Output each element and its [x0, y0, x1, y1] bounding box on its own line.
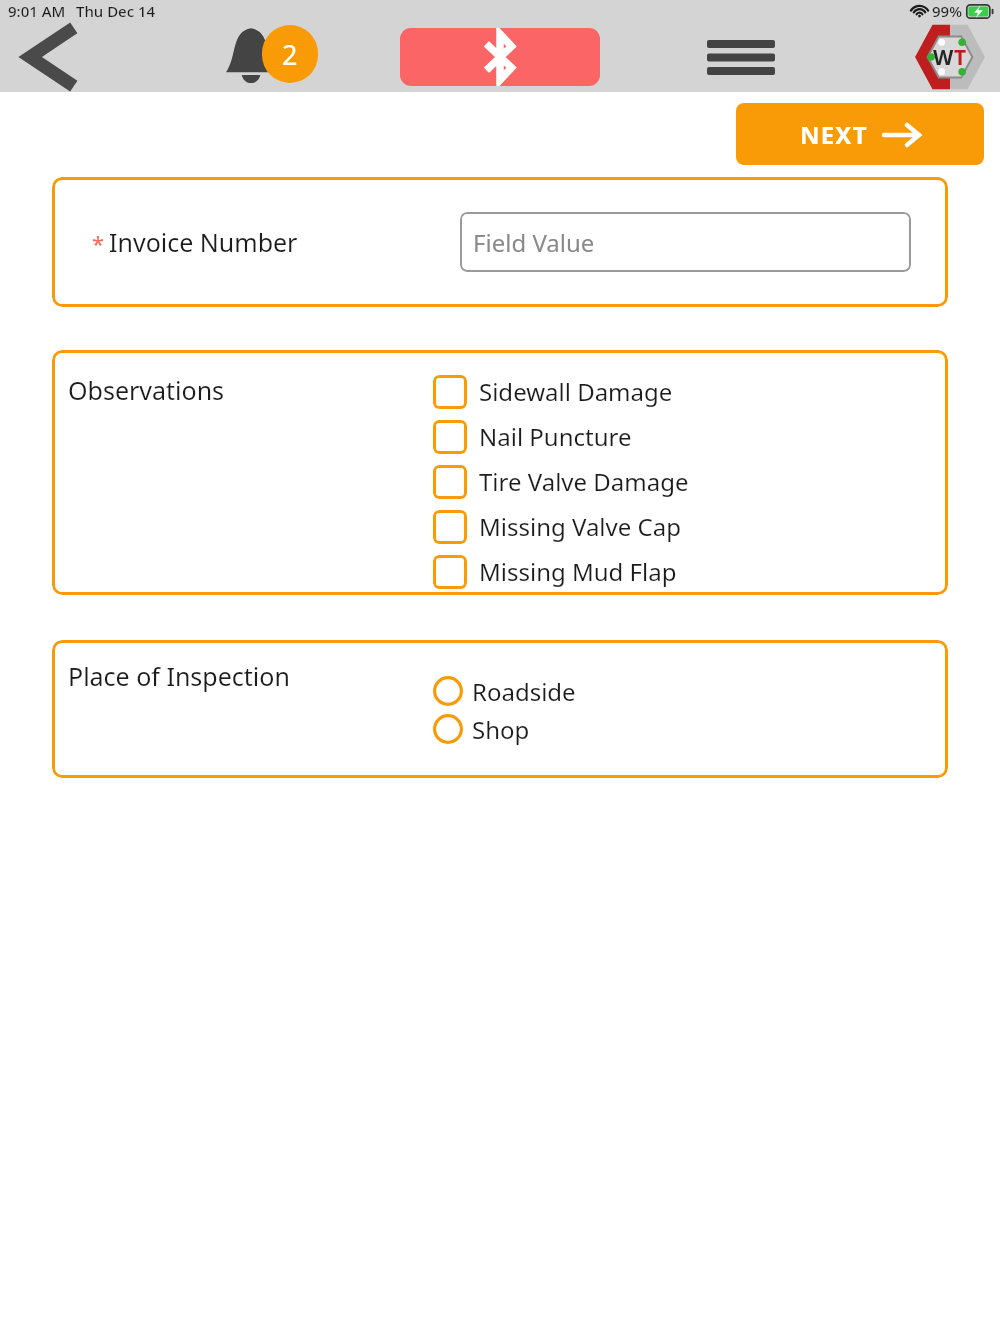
staticText: Place of Inspection	[68, 659, 290, 693]
button[interactable]: Back	[22, 25, 80, 89]
button[interactable]: App logo	[912, 22, 988, 92]
staticText: Field Value	[473, 226, 595, 259]
staticText: W	[933, 43, 954, 72]
staticText: Invoice Number	[109, 225, 298, 259]
staticText: T	[954, 43, 967, 72]
button[interactable]: Notifications	[222, 24, 332, 90]
staticText: Shop	[472, 713, 530, 746]
staticText: Observations	[68, 373, 225, 407]
button[interactable]: Sidewall Damage	[433, 369, 673, 414]
staticText: 2	[282, 36, 298, 73]
button[interactable]: Shop	[433, 710, 530, 748]
button[interactable]: Tire Valve Damage	[433, 459, 689, 504]
button[interactable]: Missing Valve Cap	[433, 504, 681, 549]
staticText: Roadside	[472, 675, 576, 708]
button[interactable]: Field Value	[460, 212, 911, 272]
button[interactable]: Menu	[700, 30, 782, 84]
staticText: Nail Puncture	[479, 420, 632, 453]
staticText: 99%	[932, 1, 962, 21]
staticText: Missing Mud Flap	[479, 555, 677, 588]
staticText: Sidewall Damage	[479, 375, 673, 408]
staticText: Tire Valve Damage	[479, 465, 689, 498]
staticText: NEXT	[800, 118, 868, 151]
staticText: *	[92, 228, 105, 258]
button[interactable]: Bluetooth	[400, 28, 600, 86]
button[interactable]: Missing Mud Flap	[433, 549, 677, 594]
button[interactable]: NEXT	[736, 103, 984, 165]
button[interactable]: Roadside	[433, 672, 576, 710]
staticText: 9:01 AM	[8, 1, 66, 21]
button[interactable]: Nail Puncture	[433, 414, 632, 459]
staticText: Missing Valve Cap	[479, 510, 681, 543]
staticText: Thu Dec 14	[76, 1, 156, 21]
